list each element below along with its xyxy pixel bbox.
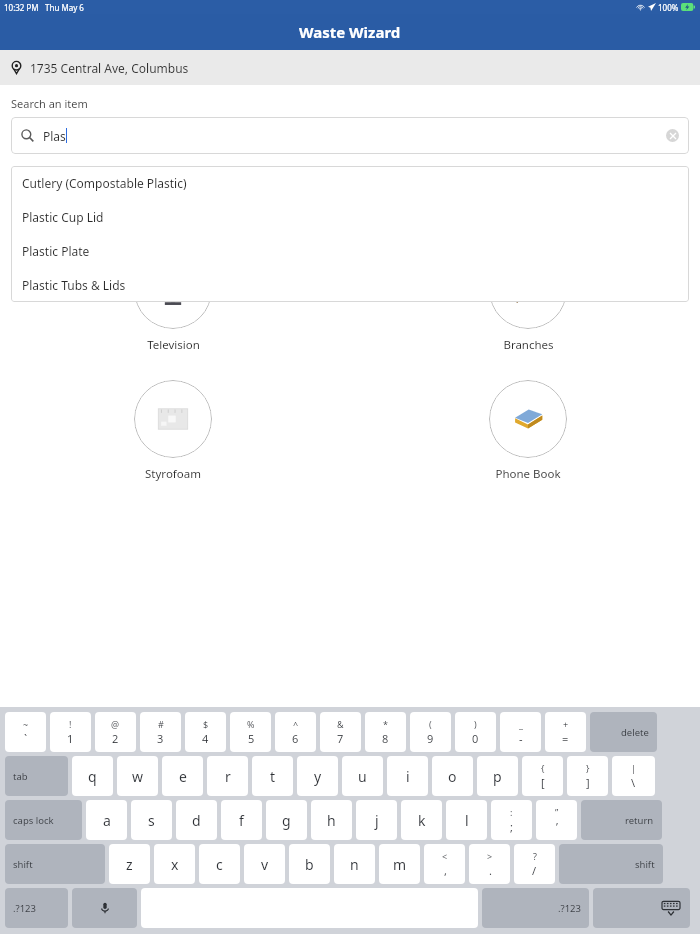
staticText: ) bbox=[474, 718, 477, 730]
button[interactable]: t bbox=[252, 756, 293, 796]
button[interactable]: .?123 bbox=[5, 888, 68, 928]
staticText: shift bbox=[13, 858, 33, 871]
button[interactable]: Dictate bbox=[72, 888, 137, 928]
button[interactable]: Plastic Tubs & Lids bbox=[11, 268, 689, 302]
button[interactable]: | bbox=[612, 756, 655, 796]
staticText: Cutlery (Compostable Plastic) bbox=[22, 175, 187, 191]
button[interactable]: Television bbox=[134, 251, 212, 361]
button[interactable]: caps lock bbox=[5, 800, 82, 840]
staticText: 0 bbox=[472, 731, 479, 746]
button[interactable]: n bbox=[334, 844, 375, 884]
button[interactable]: Styrofoam bbox=[134, 380, 212, 490]
button[interactable]: return bbox=[581, 800, 662, 840]
staticText: 5 bbox=[248, 731, 255, 746]
staticText: \ bbox=[631, 775, 636, 790]
staticText: s bbox=[148, 811, 155, 830]
button[interactable]: < bbox=[424, 844, 465, 884]
button[interactable]: h bbox=[311, 800, 352, 840]
button[interactable]: Branches bbox=[489, 251, 567, 361]
staticText: Search an item bbox=[11, 96, 88, 111]
staticText: ; bbox=[510, 819, 513, 834]
button[interactable]: ~ bbox=[5, 712, 46, 752]
staticText: j bbox=[375, 811, 379, 830]
button[interactable]: @ bbox=[95, 712, 136, 752]
button[interactable]: f bbox=[221, 800, 262, 840]
button[interactable]: l bbox=[446, 800, 487, 840]
staticText: p bbox=[493, 767, 502, 786]
staticText: w bbox=[132, 767, 144, 786]
button[interactable]: } bbox=[567, 756, 608, 796]
button[interactable]: d bbox=[176, 800, 217, 840]
button[interactable]: r bbox=[207, 756, 248, 796]
button[interactable]: & bbox=[320, 712, 361, 752]
button[interactable]: j bbox=[356, 800, 397, 840]
staticText: [ bbox=[541, 775, 545, 790]
button[interactable]: Clear search bbox=[666, 129, 679, 142]
button[interactable]: % bbox=[230, 712, 271, 752]
button[interactable]: u bbox=[342, 756, 383, 796]
button[interactable]: { bbox=[522, 756, 563, 796]
staticText: a bbox=[103, 811, 111, 830]
staticText: c bbox=[216, 855, 223, 874]
staticText: Plastic Tubs & Lids bbox=[22, 277, 126, 293]
button[interactable]: q bbox=[72, 756, 113, 796]
button[interactable]: b bbox=[289, 844, 330, 884]
button[interactable]: ! bbox=[50, 712, 91, 752]
button[interactable]: i bbox=[387, 756, 428, 796]
button[interactable]: x bbox=[154, 844, 195, 884]
button[interactable]: Phone Book bbox=[489, 380, 567, 490]
button[interactable]: .?123 bbox=[482, 888, 589, 928]
staticText: z bbox=[126, 855, 133, 874]
button[interactable]: : bbox=[491, 800, 532, 840]
staticText: 100% bbox=[658, 2, 679, 13]
button[interactable]: y bbox=[297, 756, 338, 796]
button[interactable]: Cutlery (Compostable Plastic) bbox=[11, 166, 689, 200]
button[interactable]: delete bbox=[590, 712, 657, 752]
button[interactable]: Hide keyboard bbox=[593, 888, 690, 928]
staticText: . bbox=[489, 863, 492, 878]
button[interactable]: ( bbox=[410, 712, 451, 752]
button[interactable]: o bbox=[432, 756, 473, 796]
button[interactable]: > bbox=[469, 844, 510, 884]
staticText: b bbox=[305, 855, 314, 874]
button[interactable]: z bbox=[109, 844, 150, 884]
staticText: .?123 bbox=[13, 902, 36, 915]
button[interactable]: g bbox=[266, 800, 307, 840]
button[interactable]: $ bbox=[185, 712, 226, 752]
button[interactable]: ) bbox=[455, 712, 496, 752]
button[interactable]: w bbox=[117, 756, 158, 796]
button[interactable]: e bbox=[162, 756, 203, 796]
button[interactable]: a bbox=[86, 800, 127, 840]
button[interactable]: p bbox=[477, 756, 518, 796]
staticText: : bbox=[510, 806, 513, 818]
button[interactable]: Plastic Plate bbox=[11, 234, 689, 268]
button[interactable]: s bbox=[131, 800, 172, 840]
button[interactable]: ^ bbox=[275, 712, 316, 752]
button[interactable]: ? bbox=[514, 844, 555, 884]
button[interactable]: shift bbox=[559, 844, 663, 884]
staticText: q bbox=[88, 767, 97, 786]
button[interactable]: c bbox=[199, 844, 240, 884]
button[interactable]: ” bbox=[536, 800, 577, 840]
staticText: Television bbox=[147, 337, 200, 353]
staticText: < bbox=[442, 850, 448, 862]
staticText: l bbox=[465, 811, 469, 830]
staticText: * bbox=[383, 718, 388, 730]
staticText: u bbox=[358, 767, 367, 786]
button[interactable]: v bbox=[244, 844, 285, 884]
button[interactable]: + bbox=[545, 712, 586, 752]
button[interactable]: # bbox=[140, 712, 181, 752]
button[interactable]: 1735 Central Ave, Columbus bbox=[0, 50, 700, 85]
button[interactable]: * bbox=[365, 712, 406, 752]
button[interactable]: Plastic Cup Lid bbox=[11, 200, 689, 234]
staticText: Plastic Cup Lid bbox=[22, 209, 104, 225]
staticText: > bbox=[487, 850, 493, 862]
button[interactable]: Plas bbox=[11, 117, 689, 154]
staticText: Plas bbox=[43, 128, 66, 144]
button[interactable]: shift bbox=[5, 844, 105, 884]
button[interactable]: k bbox=[401, 800, 442, 840]
button[interactable]: tab bbox=[5, 756, 68, 796]
button[interactable]: _ bbox=[500, 712, 541, 752]
button[interactable]: m bbox=[379, 844, 420, 884]
